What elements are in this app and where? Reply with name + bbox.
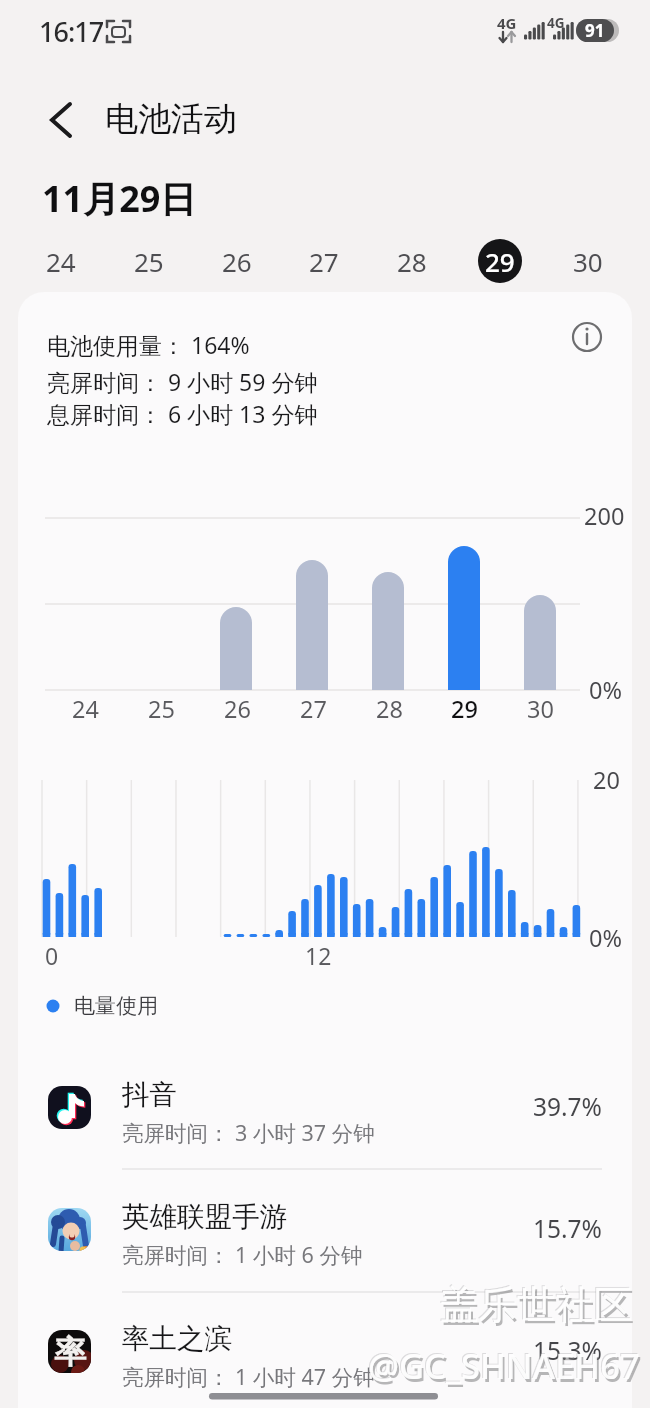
staticText: 电池活动: [105, 98, 237, 140]
staticText: 亮屏时间： 9 小时 59 分钟: [47, 366, 318, 397]
staticText: 29: [485, 244, 515, 279]
button[interactable]: 29: [460, 242, 540, 280]
staticText: 0%: [589, 922, 622, 954]
staticText: 抖音: [122, 1078, 177, 1113]
staticText: 25: [148, 693, 175, 725]
staticText: 亮屏时间： 1 小时 47 分钟: [122, 1362, 375, 1391]
staticText: 盖乐世社区: [440, 1281, 633, 1330]
staticText: 29: [451, 693, 478, 725]
staticText: 24: [72, 693, 99, 725]
staticText: 11月29日: [42, 174, 197, 223]
staticText: 0: [45, 940, 59, 971]
button[interactable]: 28: [372, 242, 452, 280]
staticText: 率: [54, 1332, 86, 1372]
staticText: 26: [222, 244, 252, 279]
staticText: 39.7%: [533, 1090, 602, 1123]
staticText: 盖乐世社区: [442, 1284, 635, 1333]
staticText: 27: [300, 693, 327, 725]
staticText: 亮屏时间： 3 小时 37 分钟: [122, 1118, 375, 1147]
staticText: 91: [585, 19, 605, 42]
staticText: 15.3%: [533, 1334, 602, 1367]
staticText: 电池使用量： 164%: [47, 329, 250, 360]
button[interactable]: 30: [548, 242, 628, 280]
staticText: 4G: [497, 13, 517, 33]
staticText: 24: [46, 244, 76, 279]
button[interactable]: [565, 315, 609, 359]
staticText: 0%: [589, 674, 622, 706]
staticText: 28: [376, 693, 403, 725]
button[interactable]: 26: [197, 242, 277, 280]
button[interactable]: [18, 1068, 632, 1190]
staticText: @GC_SHNAEH67: [367, 1341, 639, 1388]
staticText: @GC_SHNAEH67: [368, 1342, 640, 1389]
button[interactable]: [18, 1190, 632, 1312]
button[interactable]: 24: [21, 242, 101, 280]
staticText: 4G: [547, 14, 565, 32]
staticText: 12: [305, 940, 332, 971]
staticText: 率土之滨: [122, 1322, 232, 1357]
staticText: 息屏时间： 6 小时 13 分钟: [47, 398, 318, 429]
button[interactable]: 25: [109, 242, 189, 280]
button[interactable]: [40, 98, 84, 142]
staticText: 30: [527, 693, 554, 725]
staticText: @GC_SHNAEH67: [370, 1345, 642, 1392]
staticText: 26: [224, 693, 251, 725]
staticText: 30: [573, 244, 603, 279]
staticText: 200: [584, 500, 625, 532]
staticText: 15.7%: [533, 1212, 602, 1245]
staticText: 16:17: [39, 13, 104, 50]
button[interactable]: [18, 1312, 632, 1408]
staticText: 27: [309, 244, 339, 279]
staticText: 亮屏时间： 1 小时 6 分钟: [122, 1240, 363, 1269]
staticText: 电量使用: [74, 993, 158, 1019]
staticText: 28: [397, 244, 427, 279]
button[interactable]: 27: [284, 242, 364, 280]
staticText: 20: [593, 764, 620, 796]
staticText: 25: [134, 244, 164, 279]
staticText: 盖乐世社区: [439, 1280, 632, 1329]
staticText: 英雄联盟手游: [122, 1200, 287, 1235]
